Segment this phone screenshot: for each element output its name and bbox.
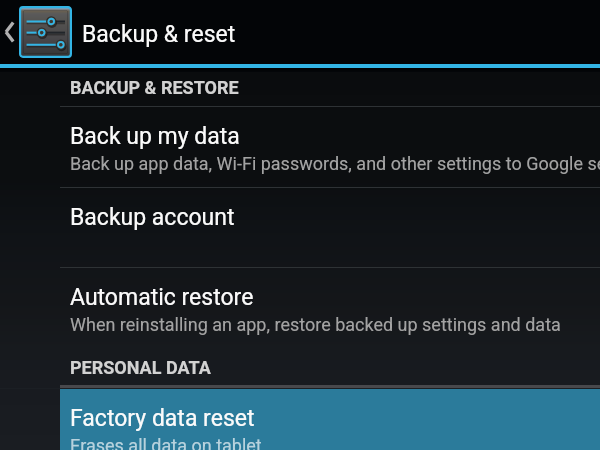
staticText: Back up my data bbox=[70, 123, 240, 150]
staticText: Back up app data, Wi-Fi passwords, and o… bbox=[70, 153, 600, 174]
button[interactable]: Navigate up to Settings bbox=[0, 0, 236, 64]
button[interactable]: Back up my data bbox=[60, 107, 600, 187]
staticText: Backup & reset bbox=[82, 21, 236, 48]
staticText: When reinstalling an app, restore backed… bbox=[70, 314, 561, 335]
button[interactable]: Backup account bbox=[60, 188, 600, 267]
staticText: Factory data reset bbox=[70, 405, 255, 432]
staticText: BACKUP & RESTORE bbox=[70, 77, 239, 98]
button[interactable]: Factory data reset bbox=[60, 389, 600, 450]
staticText: PERSONAL DATA bbox=[70, 357, 211, 378]
staticText: Automatic restore bbox=[70, 284, 254, 311]
staticText: Erases all data on tablet bbox=[70, 435, 262, 450]
staticText: Backup account bbox=[70, 204, 235, 231]
button[interactable]: Automatic restore bbox=[60, 268, 600, 348]
